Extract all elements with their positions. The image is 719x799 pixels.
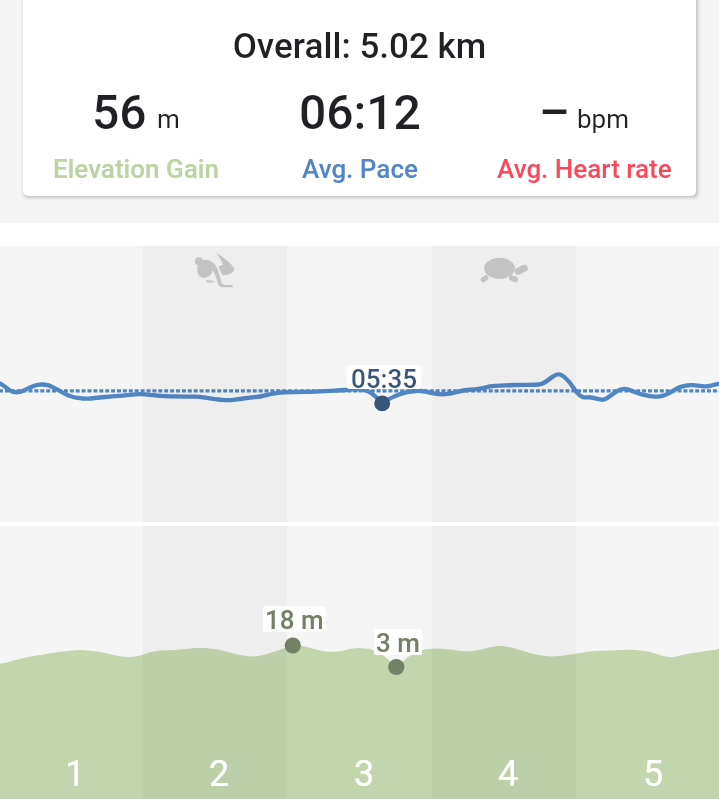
button[interactable]: 06:12 <box>248 84 472 184</box>
button[interactable]: – <box>472 84 696 184</box>
staticText: 2 <box>179 753 259 795</box>
staticText: 4 <box>468 753 548 795</box>
staticText: bpm <box>577 104 629 134</box>
staticText: 5 <box>613 753 693 795</box>
staticText: Avg. Heart rate <box>497 154 672 184</box>
button[interactable]: Pace per kilometre chart <box>0 246 719 522</box>
button[interactable]: Elevation profile chart <box>0 526 719 799</box>
staticText: m <box>157 104 180 134</box>
staticText: Elevation Gain <box>53 154 219 184</box>
staticText: 05:35 <box>351 365 418 388</box>
staticText: 3 m <box>376 629 420 654</box>
staticText: Avg. Pace <box>302 154 418 184</box>
staticText: 3 <box>324 753 404 795</box>
button[interactable]: 56 <box>23 84 248 184</box>
staticText: Overall: 5.02 km <box>23 26 696 67</box>
staticText: 18 m <box>265 606 324 631</box>
staticText: 1 <box>35 753 115 795</box>
staticText: 56 <box>92 84 147 140</box>
staticText: 06:12 <box>299 84 421 140</box>
staticText: – <box>539 84 570 140</box>
